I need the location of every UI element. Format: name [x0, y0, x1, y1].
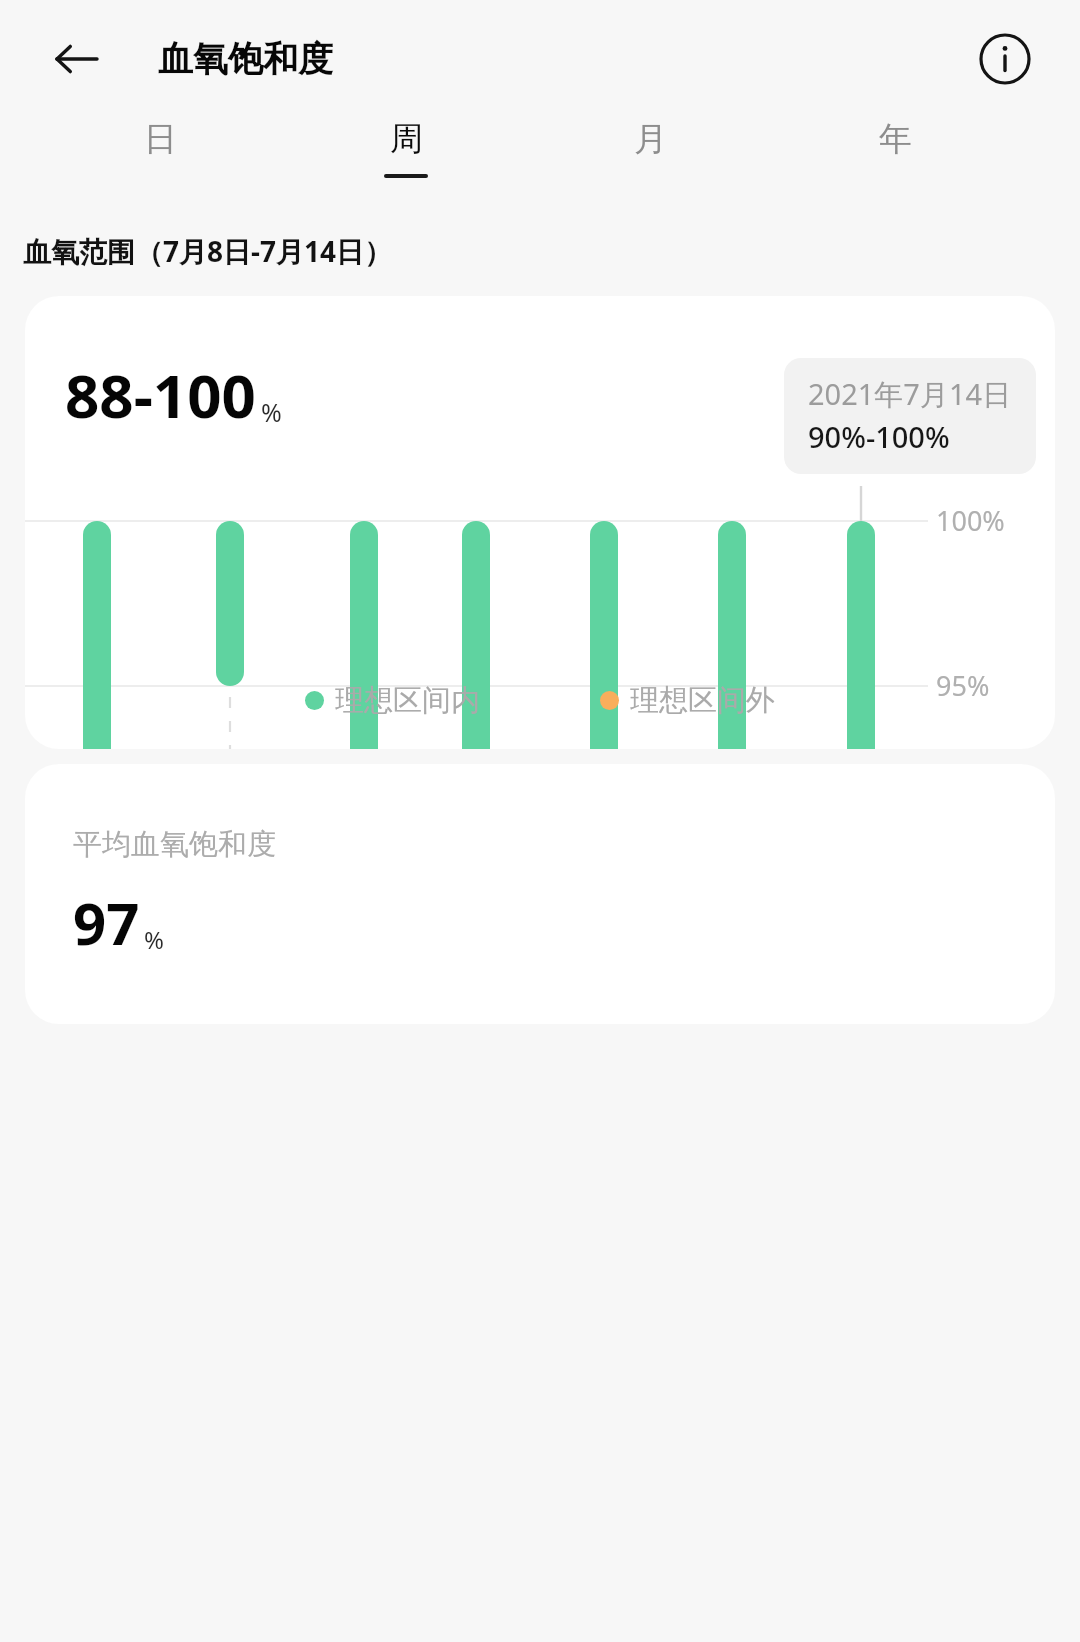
button[interactable]: 月: [528, 118, 773, 174]
staticText: 日: [144, 118, 177, 160]
button[interactable]: 平均血氧饱和度: [25, 764, 1055, 1024]
button[interactable]: 年: [773, 118, 1018, 174]
staticText: 理想区间内: [335, 682, 480, 719]
staticText: 97: [73, 883, 140, 962]
staticText: 平均血氧饱和度: [73, 826, 276, 863]
button[interactable]: 周: [283, 118, 528, 178]
staticText: 周: [390, 118, 423, 160]
staticText: 月: [634, 118, 667, 160]
staticText: 100%: [936, 502, 1005, 539]
button[interactable]: 说明: [972, 26, 1038, 92]
button[interactable]: 理想区间外: [600, 682, 775, 719]
button[interactable]: 88-100: [25, 296, 1055, 749]
staticText: %: [144, 923, 164, 956]
staticText: 90%-100%: [808, 417, 950, 456]
button[interactable]: 返回: [46, 28, 108, 90]
staticText: %: [261, 395, 282, 429]
staticText: 年: [879, 118, 912, 160]
staticText: 血氧范围（7月8日-7月14日）: [23, 232, 393, 270]
button[interactable]: 日: [38, 118, 283, 174]
staticText: 88-100: [65, 354, 256, 436]
staticText: 血氧饱和度: [158, 37, 333, 81]
button[interactable]: 理想区间内: [305, 682, 480, 719]
staticText: 理想区间外: [630, 682, 775, 719]
staticText: 95%: [936, 667, 990, 704]
staticText: 2021年7月14日: [808, 374, 1012, 414]
